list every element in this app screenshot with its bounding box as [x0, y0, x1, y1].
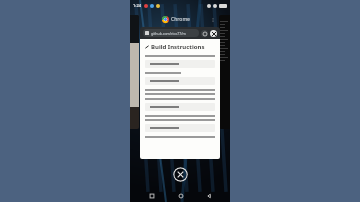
button[interactable]: Refresh — [201, 30, 208, 37]
button[interactable]: Chrome — [140, 11, 220, 159]
staticText: 1:24 — [133, 3, 141, 8]
staticText: Build Instructions — [151, 43, 205, 51]
button[interactable]: Clear all — [173, 167, 188, 182]
button[interactable]: More options — [209, 16, 216, 23]
button[interactable]: Back — [202, 189, 215, 202]
button[interactable]: Close tab — [210, 30, 217, 37]
staticText: github.com/rico77/m — [151, 31, 186, 36]
button[interactable] — [130, 15, 139, 129]
button[interactable] — [219, 15, 230, 129]
button[interactable]: github.com/rico77/m — [145, 29, 197, 37]
staticText: Chrome — [171, 16, 190, 23]
button[interactable]: Recent apps — [145, 189, 158, 202]
button[interactable]: Home — [174, 189, 187, 202]
